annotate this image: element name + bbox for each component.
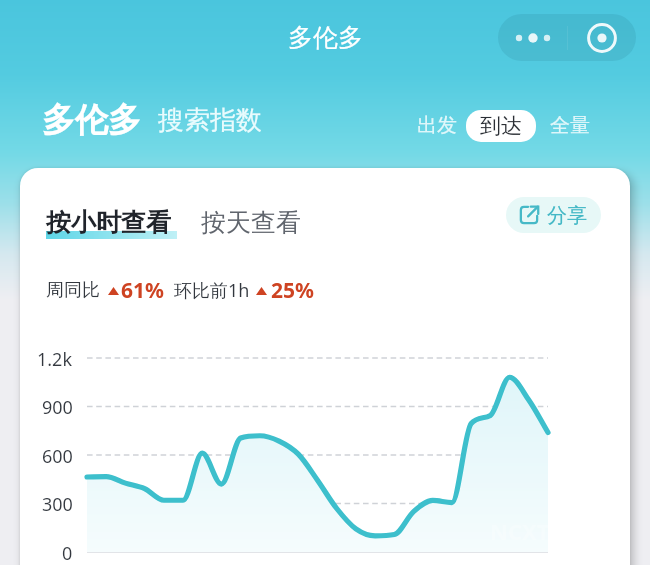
staticText: 多伦多 [288,22,363,53]
staticText: 900 [42,395,73,420]
button[interactable]: 出发 [411,107,463,144]
staticText: 到达 [480,113,522,139]
staticText: 按小时查看 [46,207,171,238]
button[interactable]: 按小时查看 [46,207,171,238]
button[interactable]: 全量 [544,107,596,144]
staticText: 全量 [550,113,590,138]
staticText: 环比前1h [174,278,250,303]
staticText: 0 [62,541,73,565]
button[interactable]: 分享 [506,197,601,233]
staticText: NCXTR [490,516,564,546]
staticText: 按天查看 [201,207,301,238]
staticText: 多伦多 [42,99,141,141]
staticText: 周同比 [46,279,100,302]
button[interactable]: Menu and close [498,14,636,61]
staticText: 25% [271,276,314,305]
staticText: 出发 [417,113,457,138]
staticText: 搜索指数 [158,104,262,137]
staticText: 61% [121,276,164,305]
button[interactable]: 到达 [466,110,536,142]
staticText: 1.2k [37,347,73,372]
staticText: 300 [42,492,73,517]
staticText: 600 [42,444,73,469]
staticText: 分享 [547,203,587,228]
button[interactable]: 按天查看 [201,207,301,238]
